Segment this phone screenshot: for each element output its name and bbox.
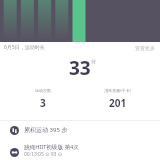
button[interactable]: Steps xyxy=(0,122,160,138)
button[interactable]: 运动次数 xyxy=(5,88,80,107)
staticText: 跳绳HIIT初级版 第4次 xyxy=(24,143,79,151)
other: Workout xyxy=(10,148,19,157)
staticText: 201 xyxy=(109,96,127,110)
button[interactable] xyxy=(0,0,160,42)
staticText: 6月5日，运动时长 xyxy=(4,44,45,51)
staticText: 分 xyxy=(91,58,96,64)
staticText: 消耗热量(千卡) xyxy=(104,88,131,93)
button[interactable]: Workout xyxy=(0,140,160,160)
staticText: 查看更多 xyxy=(135,45,155,51)
staticText: 00:13:05 ⊙ 93 ⊙ xyxy=(24,151,62,158)
staticText: 累积运动 395 步 xyxy=(24,126,68,134)
staticText: 3 xyxy=(40,96,46,110)
staticText: 运动次数 xyxy=(35,88,51,93)
staticText: 33 xyxy=(69,55,91,81)
button[interactable]: 消耗热量(千卡) xyxy=(80,88,155,107)
other: Steps xyxy=(10,126,19,135)
